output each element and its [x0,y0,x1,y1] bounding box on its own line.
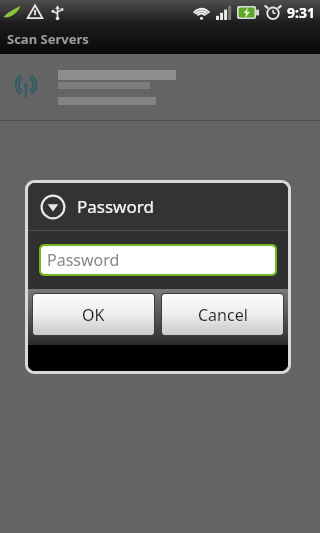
button[interactable]: OK [33,294,154,335]
other: Expand [40,194,66,220]
staticText: Scan Servers [7,30,89,48]
button[interactable] [0,54,320,120]
staticText: OK [82,304,105,326]
staticText: Cancel [198,304,248,326]
button[interactable]: Cancel [162,294,283,335]
staticText: Password [77,195,154,218]
button[interactable]: Password [41,246,275,274]
staticText: 9:31 [287,3,315,22]
staticText: Password [47,249,120,271]
